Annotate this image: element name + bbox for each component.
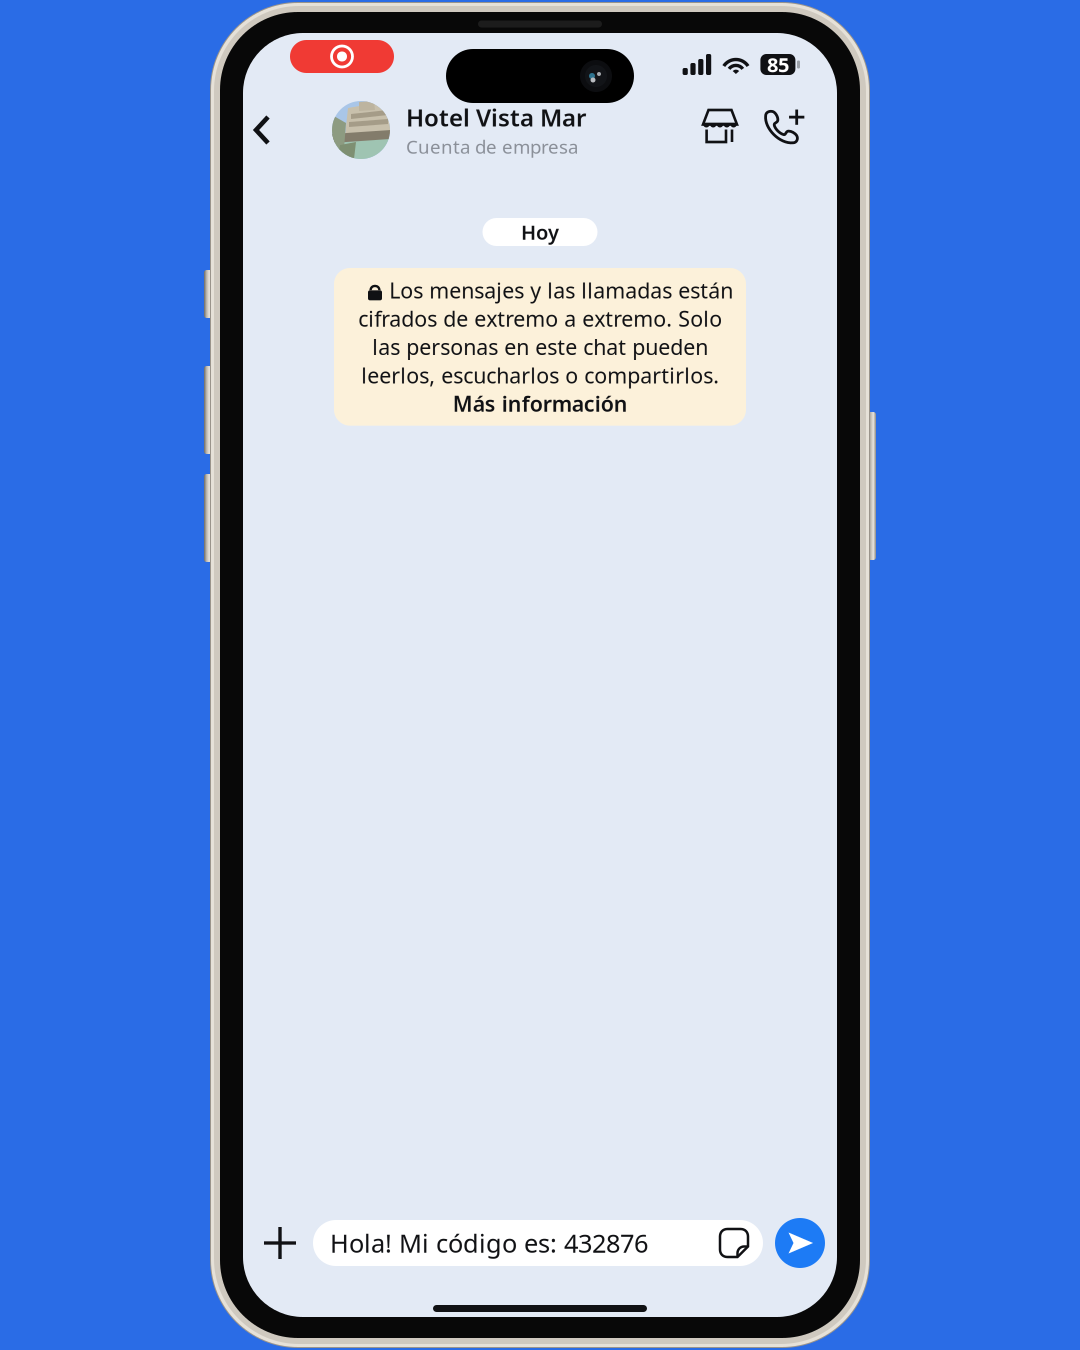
button[interactable]: Back: [244, 97, 280, 163]
staticText: Cuenta de empresa: [406, 134, 578, 159]
staticText: 85: [767, 51, 789, 78]
button[interactable]: Business profile: [700, 100, 740, 160]
staticText: Hotel Vista Mar: [406, 101, 586, 133]
button[interactable]: Stickers: [717, 1226, 751, 1260]
staticText: Los mensajes y las llamadas están cifrad…: [347, 276, 733, 418]
button[interactable]: Hotel Vista Mar: [332, 97, 586, 163]
staticText: Hoy: [521, 219, 559, 245]
button[interactable]: Call: [762, 100, 808, 160]
staticText: Hola! Mi código es: 432876: [330, 1226, 648, 1260]
button[interactable]: Send: [775, 1218, 825, 1268]
button[interactable]: Attach: [259, 1215, 301, 1271]
